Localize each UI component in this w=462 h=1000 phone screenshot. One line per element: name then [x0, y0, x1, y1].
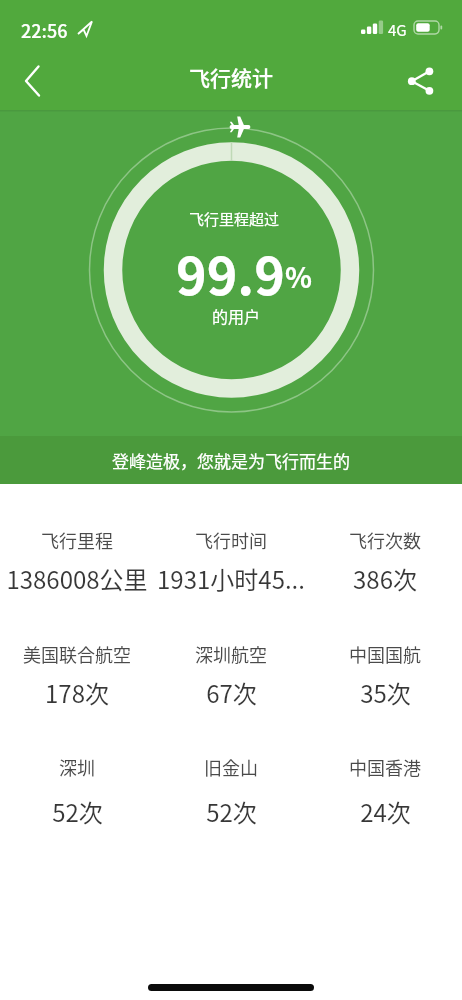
- staticText: 35次: [360, 675, 411, 710]
- staticText: 22:56: [21, 17, 68, 43]
- staticText: 飞行时间: [195, 527, 267, 553]
- button[interactable]: 深圳: [0, 754, 154, 829]
- staticText: 386次: [353, 561, 417, 596]
- button[interactable]: 飞行次数: [308, 527, 462, 596]
- button[interactable]: 飞行里程: [0, 527, 154, 596]
- button[interactable]: 旧金山: [154, 754, 308, 829]
- button[interactable]: 美国联合航空: [0, 641, 154, 710]
- button[interactable]: [406, 44, 462, 110]
- staticText: 飞行里程超过: [189, 208, 280, 230]
- staticText: 美国联合航空: [23, 641, 131, 667]
- staticText: 1931小时45...: [157, 561, 305, 596]
- staticText: 99.9: [176, 235, 285, 310]
- button[interactable]: 飞行时间: [154, 527, 308, 596]
- button[interactable]: 中国香港: [308, 754, 462, 829]
- staticText: 飞行次数: [349, 527, 421, 553]
- button[interactable]: [0, 44, 52, 110]
- staticText: 的用户: [212, 304, 261, 327]
- staticText: 1386008公里: [6, 561, 148, 596]
- staticText: 178次: [45, 675, 109, 710]
- staticText: 深圳: [59, 754, 95, 780]
- staticText: 67次: [206, 675, 257, 710]
- staticText: 4G: [388, 19, 407, 41]
- staticText: 24次: [360, 794, 411, 829]
- staticText: 中国香港: [349, 754, 421, 780]
- staticText: 飞行里程: [41, 527, 113, 553]
- button[interactable]: 中国国航: [308, 641, 462, 710]
- button[interactable]: 深圳航空: [154, 641, 308, 710]
- staticText: 飞行统计: [189, 62, 273, 92]
- staticText: 中国国航: [349, 641, 421, 667]
- staticText: %: [285, 256, 312, 297]
- staticText: 52次: [206, 794, 257, 829]
- staticText: 登峰造极，您就是为飞行而生的: [112, 448, 350, 473]
- staticText: 52次: [52, 794, 103, 829]
- staticText: 深圳航空: [195, 641, 267, 667]
- staticText: 旧金山: [204, 754, 258, 780]
